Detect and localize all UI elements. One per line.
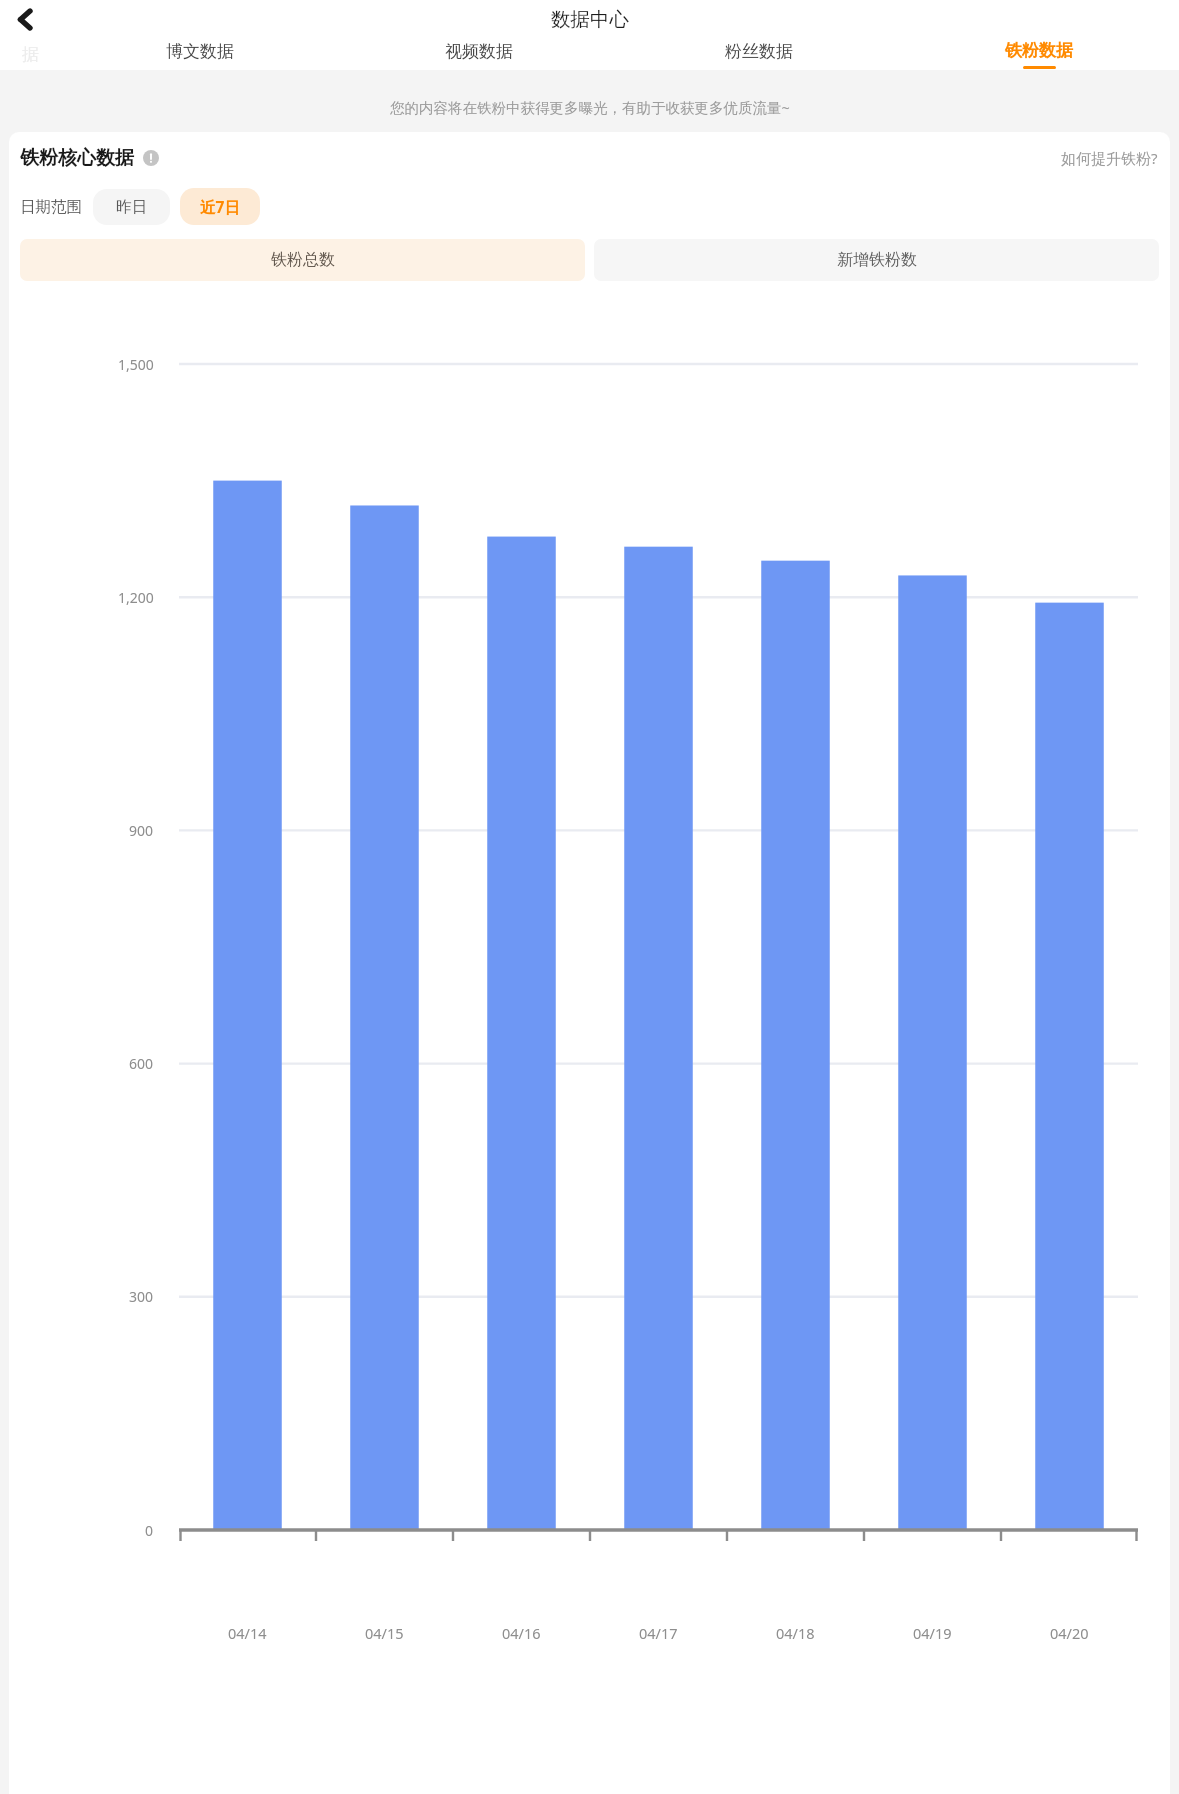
- button[interactable]: 如何提升铁粉?: [1061, 148, 1158, 168]
- staticText: 04/19: [913, 1623, 952, 1643]
- button[interactable]: 铁粉总数: [20, 239, 585, 281]
- staticText: 铁粉总数: [271, 250, 335, 270]
- button[interactable]: 近7日: [180, 188, 260, 225]
- staticText: 1,500: [118, 355, 154, 374]
- button[interactable]: Previous tab: [0, 38, 60, 70]
- staticText: 昨日: [116, 197, 147, 217]
- staticText: 您的内容将在铁粉中获得更多曝光，有助于收获更多优质流量~: [390, 97, 790, 117]
- staticText: 据: [22, 44, 39, 65]
- staticText: 04/18: [776, 1623, 815, 1643]
- button[interactable]: 新增铁粉数: [594, 239, 1159, 281]
- staticText: 04/17: [639, 1623, 678, 1643]
- staticText: 04/20: [1050, 1623, 1089, 1643]
- staticText: 04/15: [365, 1623, 404, 1643]
- staticText: 近7日: [200, 196, 240, 217]
- staticText: 铁粉核心数据: [20, 146, 134, 170]
- button[interactable]: 博文数据: [60, 38, 339, 70]
- staticText: 博文数据: [166, 41, 234, 62]
- staticText: 1,200: [118, 588, 154, 607]
- button[interactable]: 视频数据: [339, 38, 619, 70]
- button[interactable]: Info: [141, 148, 161, 168]
- button[interactable]: 铁粉数据: [899, 38, 1179, 70]
- staticText: 新增铁粉数: [837, 250, 917, 270]
- staticText: 04/14: [228, 1623, 267, 1643]
- staticText: 粉丝数据: [725, 41, 793, 62]
- button[interactable]: 昨日: [93, 189, 170, 225]
- staticText: 如何提升铁粉?: [1061, 148, 1158, 168]
- staticText: 04/16: [502, 1623, 541, 1643]
- staticText: 视频数据: [445, 41, 513, 62]
- staticText: 900: [129, 821, 154, 840]
- staticText: 300: [129, 1287, 154, 1306]
- staticText: 数据中心: [551, 7, 629, 32]
- staticText: 日期范围: [20, 197, 82, 217]
- staticText: 600: [129, 1054, 154, 1073]
- staticText: 铁粉数据: [1005, 40, 1073, 61]
- button[interactable]: Back: [4, 0, 46, 38]
- button[interactable]: 粉丝数据: [619, 38, 899, 70]
- staticText: 0: [145, 1521, 154, 1540]
